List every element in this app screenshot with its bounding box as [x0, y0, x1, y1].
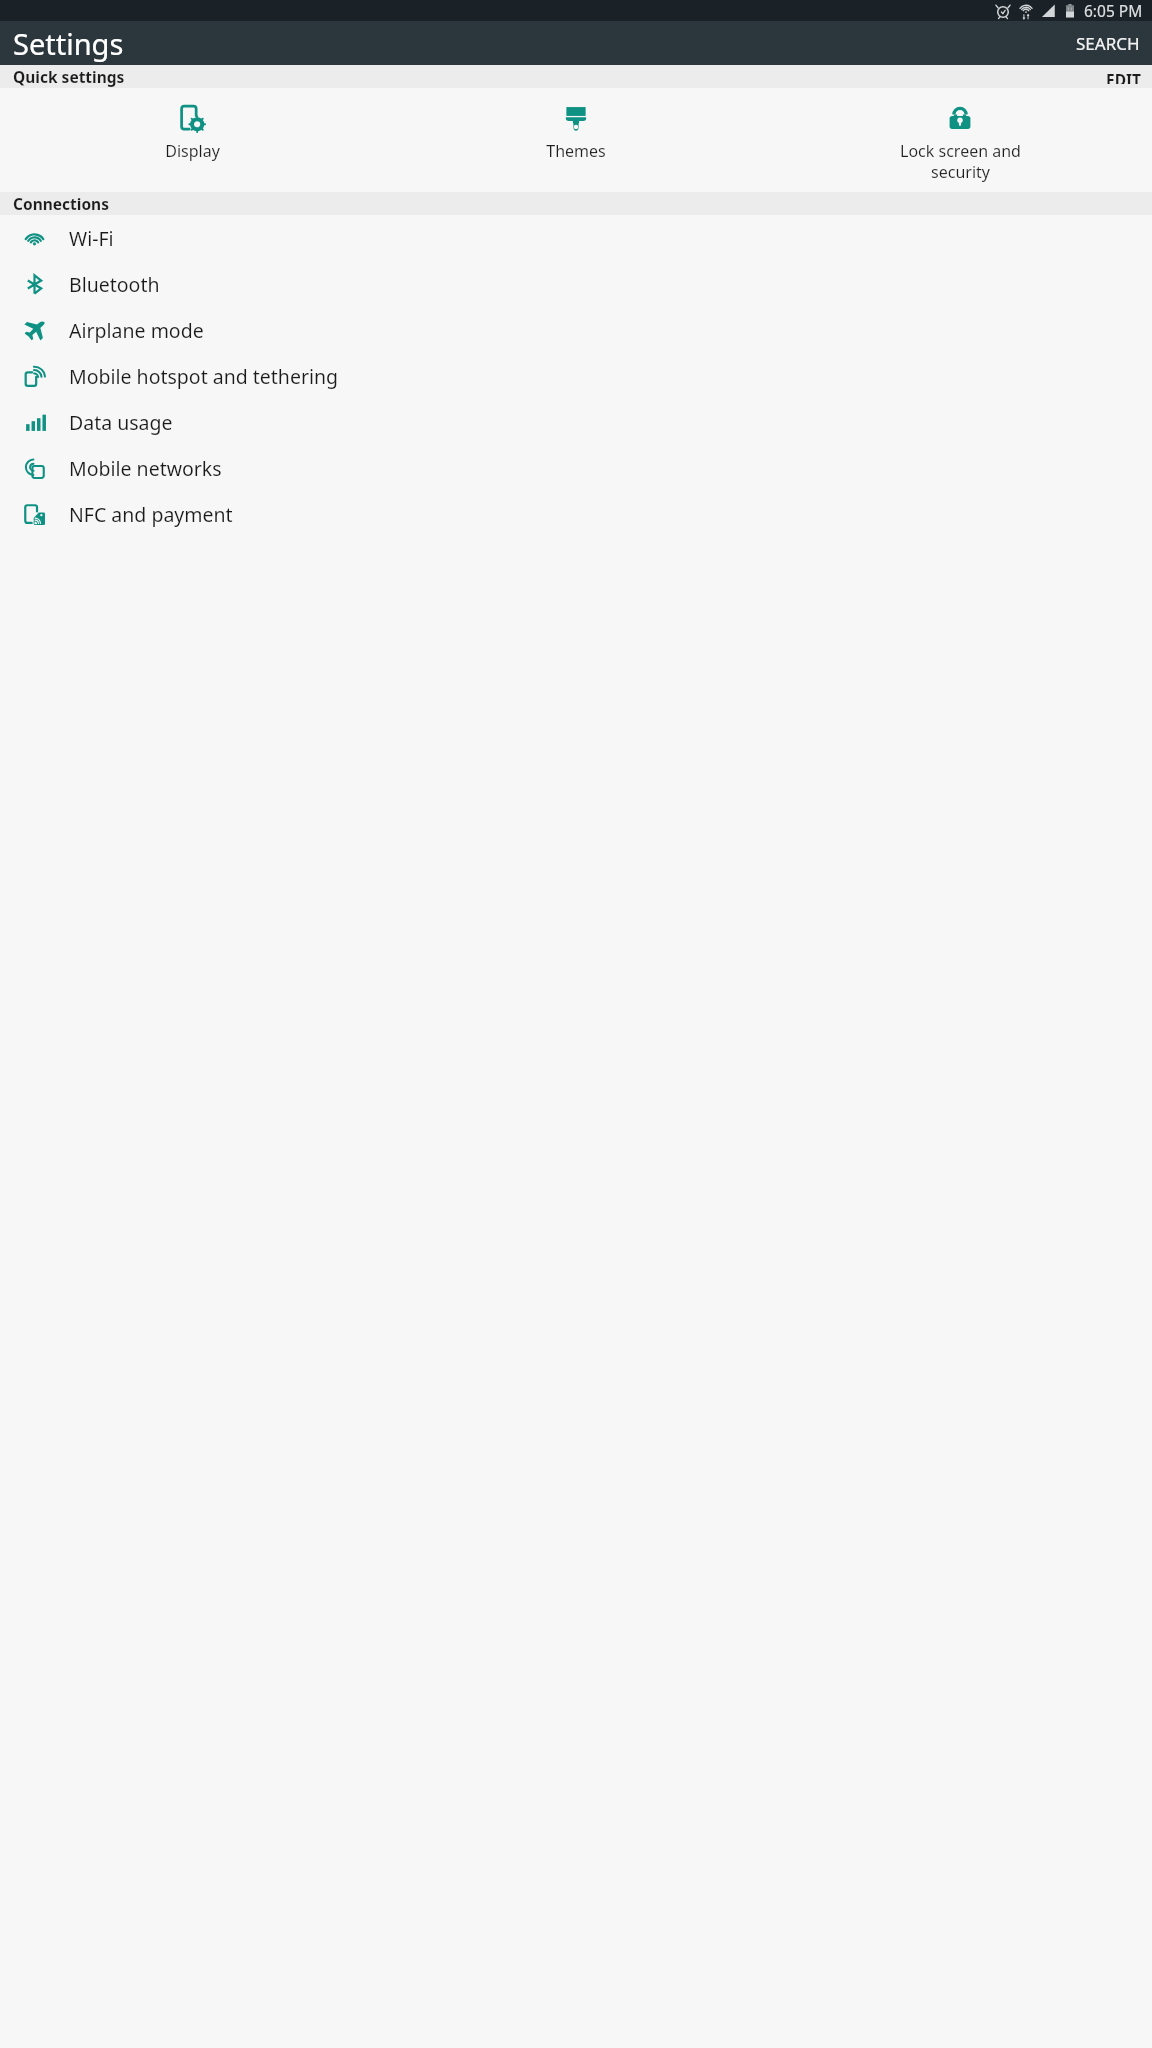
button[interactable]: Wi-Fi — [0, 215, 1152, 261]
staticText: Bluetooth — [69, 271, 160, 298]
button[interactable]: Airplane mode — [0, 307, 1152, 353]
button[interactable]: Data usage — [0, 399, 1152, 445]
button[interactable]: Themes — [384, 88, 768, 192]
button[interactable]: EDIT — [1095, 65, 1152, 88]
staticText: SEARCH — [1076, 32, 1140, 55]
button[interactable]: Mobile hotspot and tethering — [0, 353, 1152, 399]
staticText: Data usage — [69, 409, 173, 436]
staticText: Themes — [546, 140, 606, 162]
staticText: Wi-Fi — [69, 225, 114, 252]
button[interactable]: SEARCH — [1064, 24, 1152, 63]
button[interactable]: Mobile networks — [0, 445, 1152, 491]
staticText: Lock screen and security — [900, 140, 1021, 183]
button[interactable]: Lock screen and security — [768, 88, 1152, 192]
button[interactable]: NFC and payment — [0, 491, 1152, 537]
staticText: NFC and payment — [69, 501, 233, 528]
staticText: Settings — [13, 24, 124, 63]
staticText: Display — [165, 140, 220, 162]
staticText: Airplane mode — [69, 317, 204, 344]
staticText: Mobile hotspot and tethering — [69, 363, 339, 390]
staticText: Connections — [13, 193, 109, 214]
staticText: Quick settings — [13, 66, 125, 87]
button[interactable]: Bluetooth — [0, 261, 1152, 307]
button[interactable]: Display — [0, 88, 384, 192]
staticText: EDIT — [1106, 69, 1141, 84]
staticText: 6:05 PM — [1084, 0, 1143, 21]
staticText: Mobile networks — [69, 455, 222, 482]
